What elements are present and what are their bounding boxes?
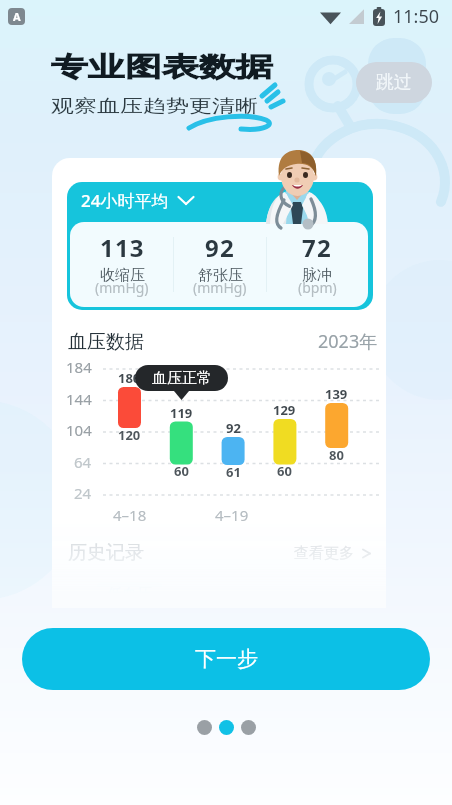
staticText: 24小时平均 (81, 189, 169, 212)
staticText: 119 (170, 404, 193, 422)
staticText: 舒张压 (198, 266, 243, 285)
staticText: (mmHg) (193, 278, 247, 297)
staticText: 139 (325, 385, 348, 403)
staticText: A (13, 9, 21, 24)
staticText: 11:50 (393, 4, 440, 29)
staticText: 92 (226, 419, 241, 437)
staticText: 80 (329, 446, 344, 464)
staticText: (mmHg) (95, 278, 149, 297)
staticText: 60 (174, 462, 189, 480)
staticText: 144 (66, 389, 92, 409)
staticText: 61 (226, 463, 241, 481)
staticText: 查看更多 (294, 544, 354, 563)
staticText: 104 (66, 420, 92, 440)
staticText: 180 (118, 369, 141, 387)
staticText: 120 (118, 426, 141, 444)
staticText: 观察血压趋势更清晰 (51, 95, 258, 118)
staticText: 92 (205, 231, 235, 264)
staticText: 72 (302, 231, 332, 264)
staticText: 血压正常 (152, 369, 212, 388)
staticText: 下一步 (195, 646, 258, 672)
staticText: 129 (273, 401, 296, 419)
staticText: 专业图表数据 (51, 50, 273, 83)
button[interactable]: 历史记录 (68, 541, 372, 565)
staticText: 113 (100, 231, 145, 264)
staticText: 历史记录 (68, 541, 144, 565)
staticText: 184 (66, 357, 92, 377)
staticText: 收缩压 (100, 266, 145, 285)
staticText: 64 (74, 452, 92, 472)
button[interactable]: 下一步 (22, 628, 430, 690)
staticText: 血压数据 (68, 330, 144, 354)
staticText: 跳过 (376, 71, 412, 94)
staticText: (bpm) (298, 278, 337, 297)
staticText: 60 (277, 462, 292, 480)
staticText: 24 (74, 483, 92, 503)
staticText: 4–18 (113, 505, 147, 525)
button[interactable]: 跳过 (356, 62, 432, 103)
staticText: 2023年 (318, 329, 378, 354)
staticText: 4–19 (215, 505, 249, 525)
staticText: 脉冲 (302, 266, 332, 285)
